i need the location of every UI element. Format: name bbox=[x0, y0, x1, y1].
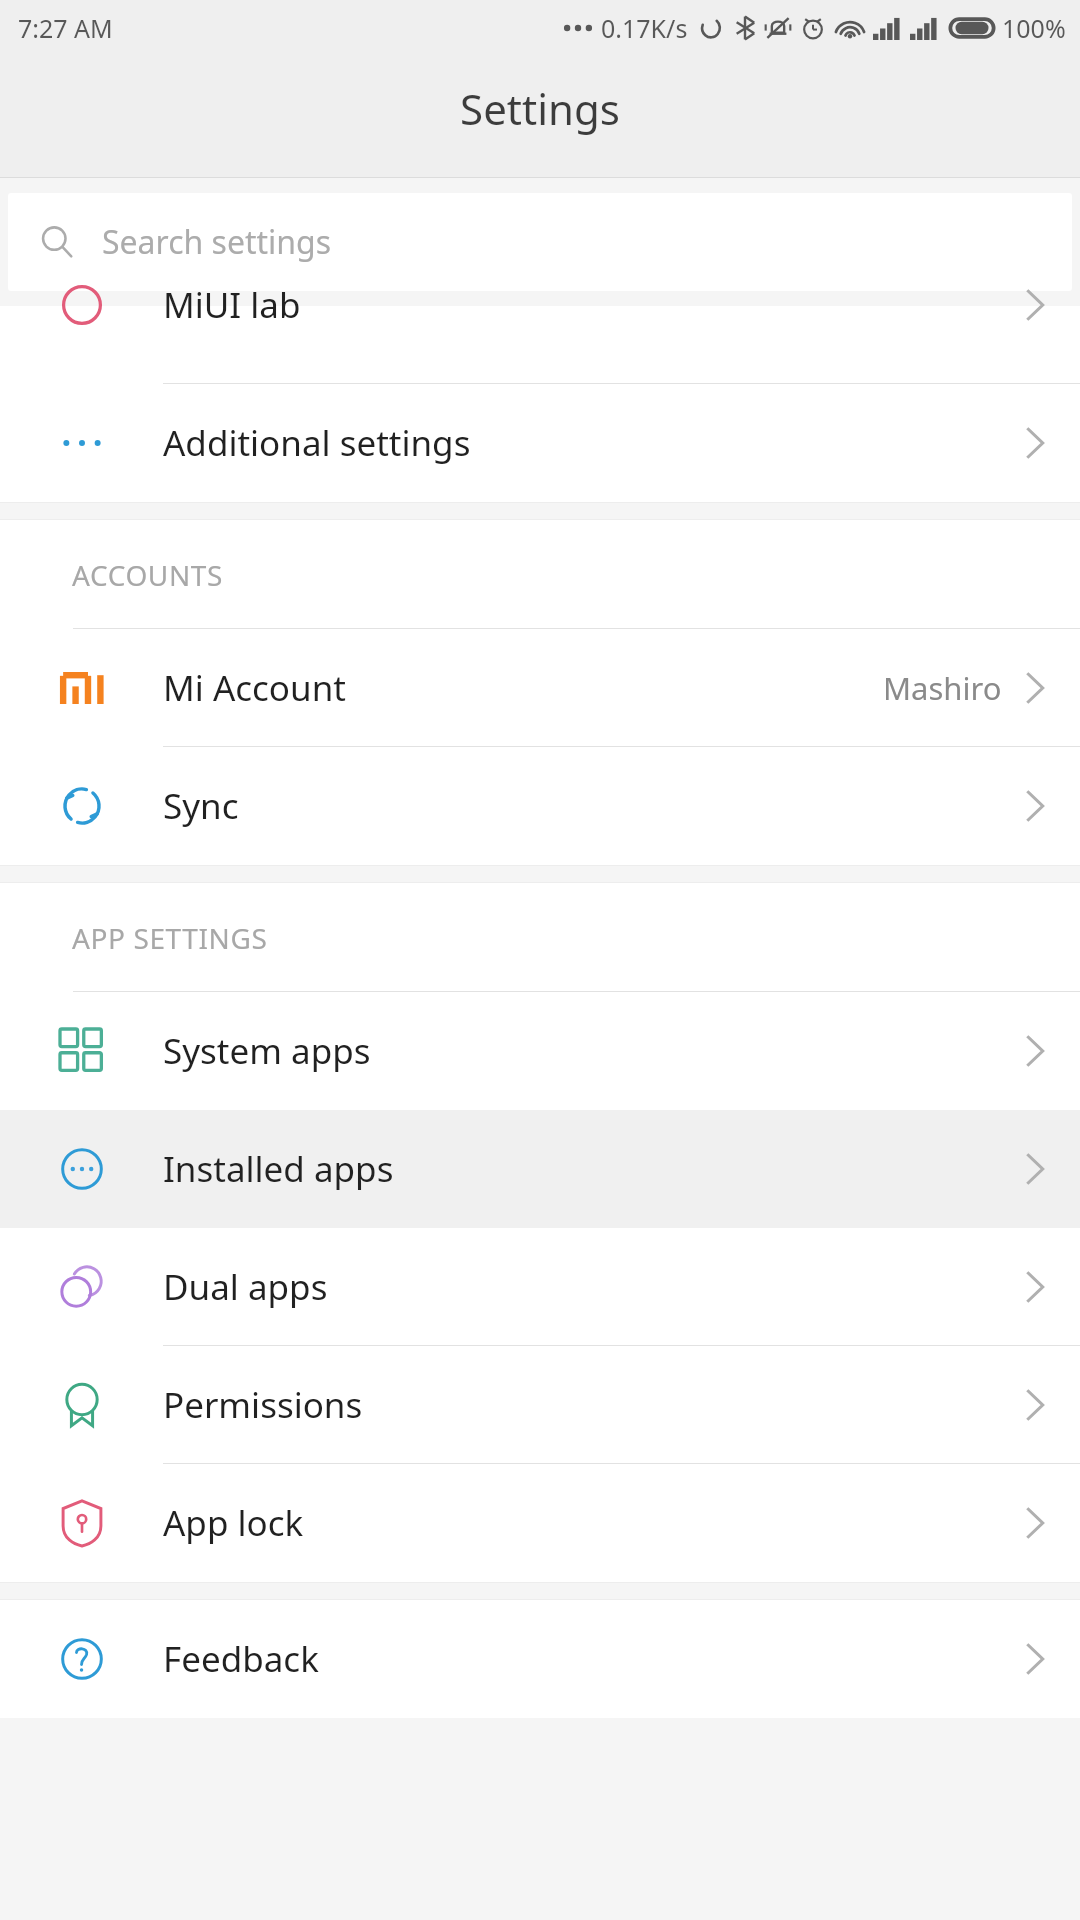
staticText: MiUI lab bbox=[163, 281, 301, 329]
staticText: Mashiro bbox=[883, 667, 1002, 709]
staticText: Settings bbox=[460, 80, 620, 137]
staticText: Permissions bbox=[163, 1381, 363, 1429]
staticText: App lock bbox=[163, 1499, 304, 1547]
staticText: APP SETTINGS bbox=[72, 919, 268, 957]
staticText: Feedback bbox=[163, 1635, 319, 1683]
button[interactable]: MiUI lab bbox=[0, 306, 1080, 384]
staticText: 100% bbox=[1002, 11, 1066, 45]
button[interactable]: Additional settings bbox=[0, 384, 1080, 502]
staticText: System apps bbox=[163, 1027, 371, 1075]
button[interactable]: System apps bbox=[0, 992, 1080, 1110]
staticText: Dual apps bbox=[163, 1263, 328, 1311]
button[interactable]: Dual apps bbox=[0, 1228, 1080, 1346]
button[interactable]: Search settings bbox=[8, 193, 1072, 291]
staticText: Sync bbox=[163, 782, 239, 830]
button[interactable]: Permissions bbox=[0, 1346, 1080, 1464]
staticText: 0.17K/s bbox=[601, 11, 688, 45]
button[interactable]: Mi Account bbox=[0, 629, 1080, 747]
button[interactable]: Installed apps bbox=[0, 1110, 1080, 1228]
button[interactable]: Feedback bbox=[0, 1600, 1080, 1718]
staticText: Search settings bbox=[102, 220, 332, 264]
staticText: 7:27 AM bbox=[18, 11, 113, 45]
button[interactable]: Sync bbox=[0, 747, 1080, 865]
staticText: ACCOUNTS bbox=[72, 556, 223, 594]
staticText: Installed apps bbox=[163, 1145, 394, 1193]
staticText: Mi Account bbox=[163, 664, 346, 712]
button[interactable]: App lock bbox=[0, 1464, 1080, 1582]
staticText: Additional settings bbox=[163, 419, 471, 467]
